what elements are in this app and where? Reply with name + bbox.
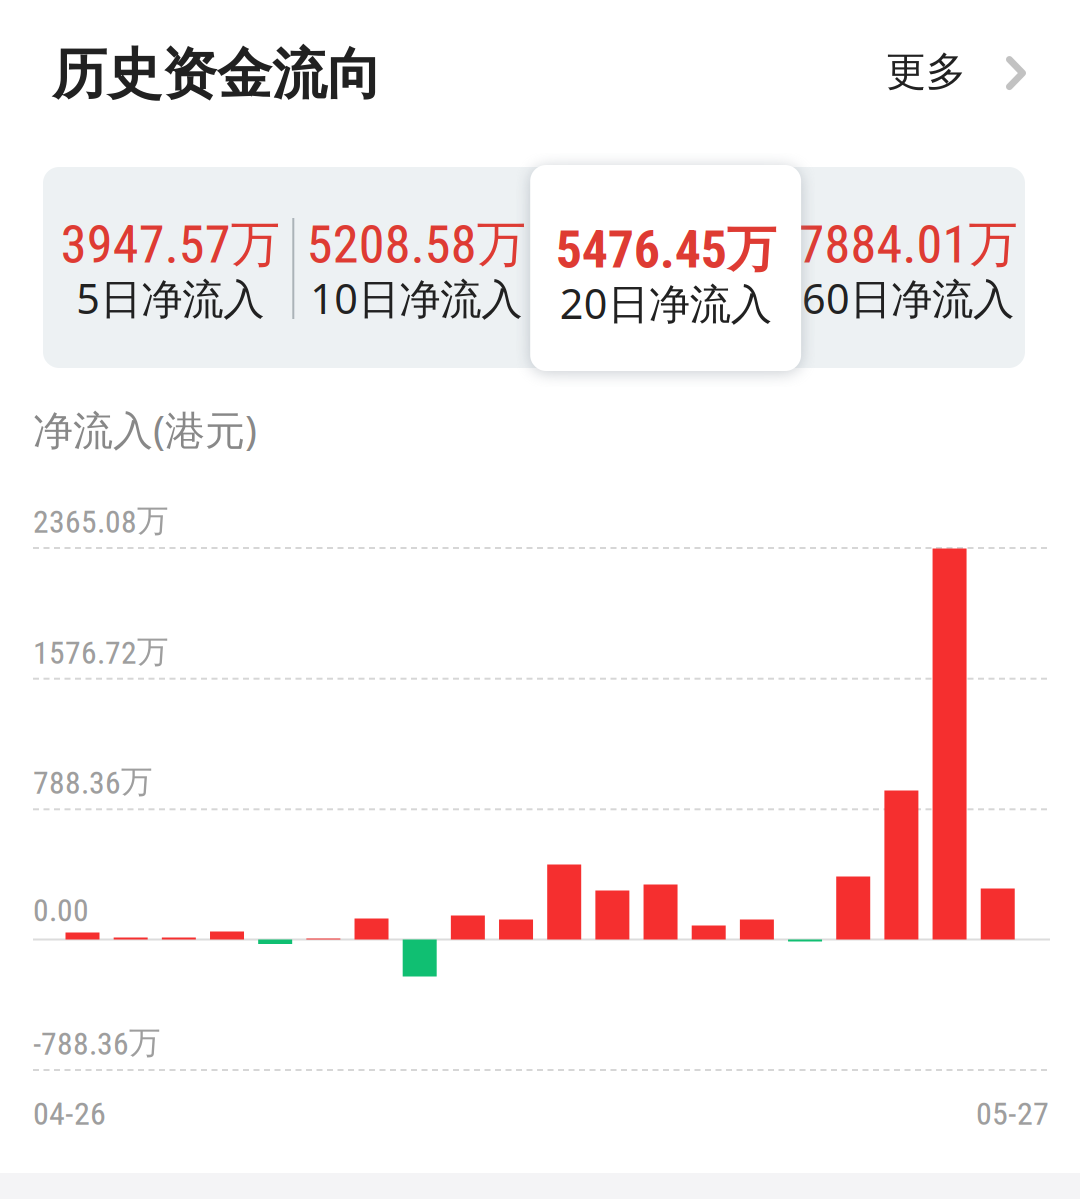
staticText: 更多	[886, 47, 966, 96]
staticText: 10日净流入	[310, 271, 522, 325]
staticText: 历史资金流向	[52, 41, 382, 108]
button[interactable]: 5476.45万	[556, 165, 776, 371]
staticText: 788.36万	[33, 762, 153, 802]
staticText: -788.36万	[33, 1023, 161, 1063]
staticText: 3947.57万	[61, 214, 280, 275]
button[interactable]: 5208.58万	[307, 167, 526, 368]
staticText: 5日净流入	[76, 271, 264, 325]
staticText: 60日净流入	[802, 271, 1014, 325]
staticText: 净流入(港元)	[33, 403, 257, 456]
button[interactable]: 更多	[880, 33, 1032, 110]
staticText: 0.00	[33, 892, 89, 929]
staticText: 7884.01万	[799, 214, 1018, 275]
button[interactable]: 5476.45万	[553, 167, 772, 368]
staticText: 5208.58万	[307, 214, 526, 275]
staticText: 1576.72万	[33, 632, 169, 672]
staticText: 5476.45万	[556, 219, 776, 280]
staticText: 20日净流入	[560, 276, 772, 330]
staticText: 04-26	[33, 1095, 106, 1132]
button[interactable]: 3947.57万	[61, 167, 280, 368]
button[interactable]: 7884.01万	[799, 167, 1018, 368]
staticText: 20日净流入	[556, 271, 768, 325]
staticText: 5476.45万	[553, 214, 772, 275]
staticText: 05-27	[976, 1095, 1049, 1132]
staticText: 2365.08万	[33, 501, 169, 541]
